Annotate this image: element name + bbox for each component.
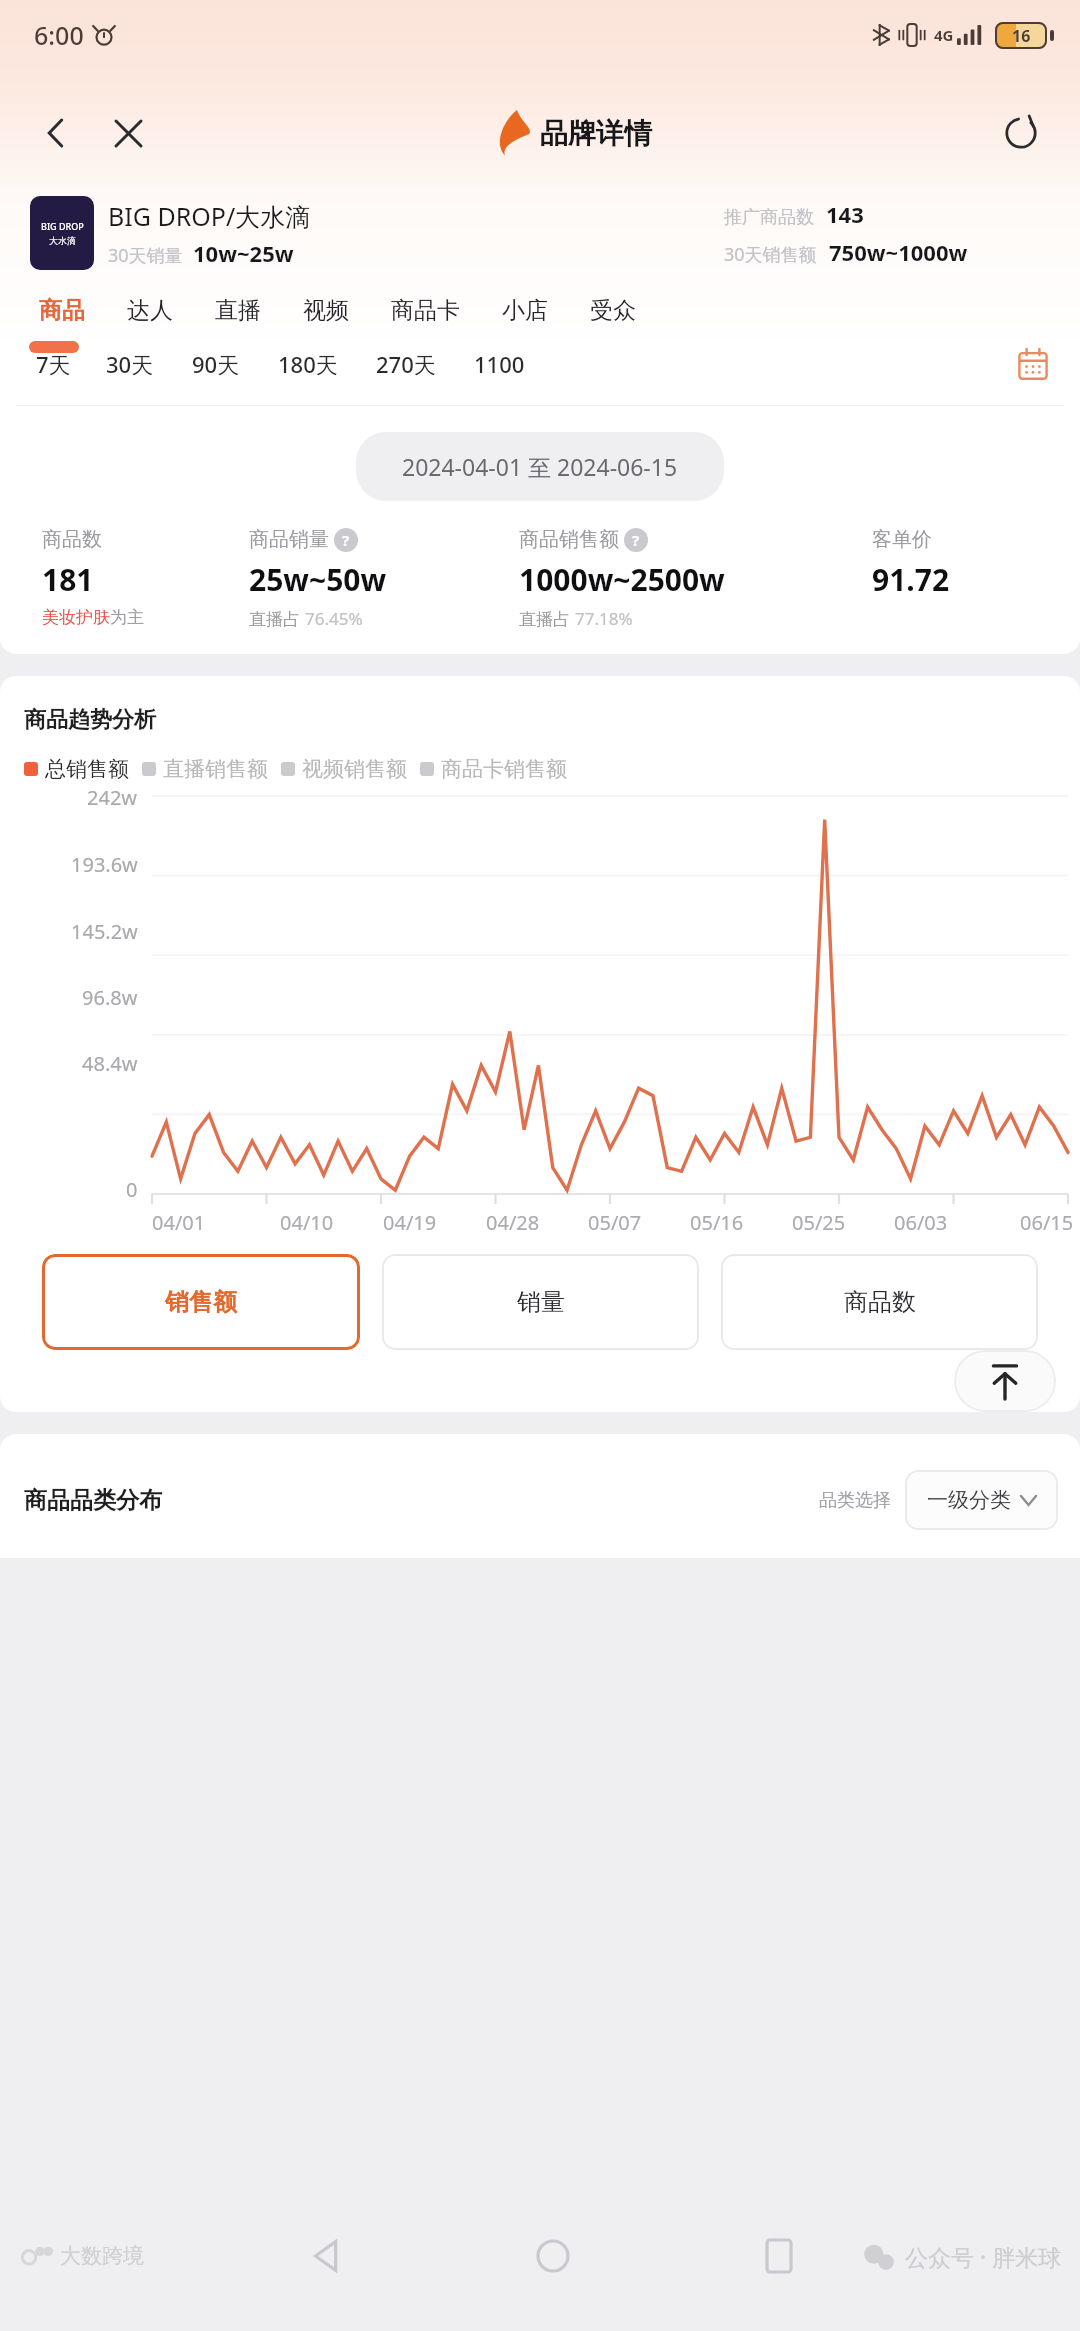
staticText: 242w <box>87 784 138 811</box>
button[interactable]: BIG DROP <box>30 196 94 270</box>
button[interactable]: Recent apps <box>737 2214 821 2298</box>
button[interactable]: 2024-04-01 至 2024-06-15 <box>356 432 724 501</box>
button[interactable]: Back <box>285 2214 369 2298</box>
staticText: 品类选择 <box>819 1489 891 1512</box>
staticText: 05/07 <box>588 1209 642 1236</box>
staticText: 商品 <box>39 296 85 325</box>
staticText: 品牌详情 <box>540 116 652 151</box>
button[interactable]: 180天 <box>259 341 357 387</box>
staticText: 30天 <box>106 349 154 379</box>
button[interactable]: 销量 <box>382 1254 699 1350</box>
button[interactable]: 客单价 <box>872 527 1048 607</box>
staticText: 30天销量 <box>108 243 183 268</box>
staticText: 达人 <box>127 296 173 325</box>
staticText: 大数跨境 <box>60 2243 144 2269</box>
button[interactable]: Back <box>28 105 84 161</box>
staticText: 小店 <box>502 296 548 325</box>
staticText: 77.18% <box>575 607 633 630</box>
staticText: 143 <box>826 199 864 229</box>
staticText: 25w~50w <box>249 559 387 600</box>
button[interactable]: 小店 <box>481 282 569 339</box>
staticText: 30天销售额 <box>724 242 817 267</box>
button[interactable]: 商品数 <box>721 1254 1038 1350</box>
button[interactable]: 视频 <box>282 282 370 339</box>
staticText: 大水滴 <box>49 235 76 246</box>
staticText: 181 <box>42 559 94 600</box>
staticText: 商品销售额 <box>519 527 619 552</box>
staticText: 客单价 <box>872 527 932 552</box>
staticText: 商品卡 <box>391 296 460 325</box>
button[interactable]: 受众 <box>569 282 657 339</box>
button[interactable]: 达人 <box>106 282 194 339</box>
staticText: 销量 <box>517 1287 565 1317</box>
button[interactable]: 一级分类 <box>905 1470 1058 1530</box>
staticText: 270天 <box>376 349 436 379</box>
button[interactable]: 90天 <box>173 341 259 387</box>
staticText: 2024-04-01 至 2024-06-15 <box>402 451 678 482</box>
staticText: 05/25 <box>792 1209 846 1236</box>
staticText: 06/15 <box>1020 1209 1074 1236</box>
staticText: 直播 <box>215 296 261 325</box>
staticText: 商品品类分布 <box>24 1486 162 1515</box>
button[interactable]: 商品 <box>18 282 106 339</box>
staticText: 193.6w <box>71 851 138 878</box>
button[interactable]: 270天 <box>357 341 455 387</box>
button[interactable]: 商品数 <box>42 527 249 628</box>
staticText: 美妆护肤 <box>42 607 110 628</box>
staticText: BIG DROP/大水滴 <box>108 199 311 233</box>
staticText: 145.2w <box>71 918 138 945</box>
staticText: 为主 <box>110 607 144 628</box>
staticText: 06/03 <box>894 1209 948 1236</box>
staticText: 视频 <box>303 296 349 325</box>
staticText: BIG DROP <box>41 220 84 232</box>
button[interactable]: Home <box>511 2214 595 2298</box>
button[interactable]: 商品销量 <box>249 527 519 630</box>
staticText: 04/01 <box>152 1209 206 1236</box>
button[interactable]: 7天 <box>20 341 87 387</box>
staticText: 直播销售额 <box>163 756 268 782</box>
button[interactable]: 30天 <box>87 341 173 387</box>
staticText: 受众 <box>590 296 636 325</box>
staticText: ? <box>342 530 350 550</box>
staticText: 750w~1000w <box>829 237 968 267</box>
button[interactable]: 直播 <box>194 282 282 339</box>
staticText: 91.72 <box>872 559 950 600</box>
button[interactable]: Pick date range <box>1008 339 1058 389</box>
staticText: 180天 <box>278 349 338 379</box>
staticText: 04/19 <box>383 1209 437 1236</box>
button[interactable]: Scroll to top <box>954 1350 1056 1412</box>
staticText: 商品趋势分析 <box>24 706 156 734</box>
staticText: ? <box>632 530 640 550</box>
button[interactable]: 总销售额 <box>24 756 142 782</box>
button[interactable]: 商品卡销售额 <box>420 756 580 782</box>
staticText: 公众号 · 胖米球 <box>905 2241 1062 2272</box>
staticText: 04/10 <box>280 1209 334 1236</box>
button[interactable]: 商品销售额 <box>519 527 872 630</box>
staticText: 7天 <box>36 349 71 379</box>
staticText: 总销售额 <box>45 756 129 782</box>
button[interactable]: 商品卡 <box>370 282 481 339</box>
staticText: 1100 <box>474 349 525 379</box>
button[interactable]: 视频销售额 <box>281 756 420 782</box>
staticText: 96.8w <box>82 984 138 1011</box>
staticText: 10w~25w <box>193 238 294 268</box>
staticText: 90天 <box>192 349 240 379</box>
staticText: 05/16 <box>690 1209 744 1236</box>
staticText: 商品销量 <box>249 527 329 552</box>
staticText: 商品卡销售额 <box>441 756 567 782</box>
button[interactable]: 直播销售额 <box>142 756 281 782</box>
staticText: 商品数 <box>844 1287 916 1317</box>
staticText: 推广商品数 <box>724 206 814 229</box>
staticText: 4G <box>934 25 954 45</box>
staticText: 76.45% <box>305 607 363 630</box>
button[interactable]: 1100 <box>455 341 544 387</box>
button[interactable]: 销售额 <box>42 1254 360 1350</box>
button[interactable]: Close <box>100 105 156 161</box>
staticText: 48.4w <box>82 1050 138 1077</box>
button[interactable]: Refresh <box>990 102 1052 164</box>
staticText: 1000w~2500w <box>519 559 725 600</box>
staticText: 0 <box>126 1176 138 1203</box>
staticText: 6:00 <box>34 18 84 52</box>
staticText: 一级分类 <box>927 1487 1011 1513</box>
staticText: 直播占 <box>249 607 305 630</box>
